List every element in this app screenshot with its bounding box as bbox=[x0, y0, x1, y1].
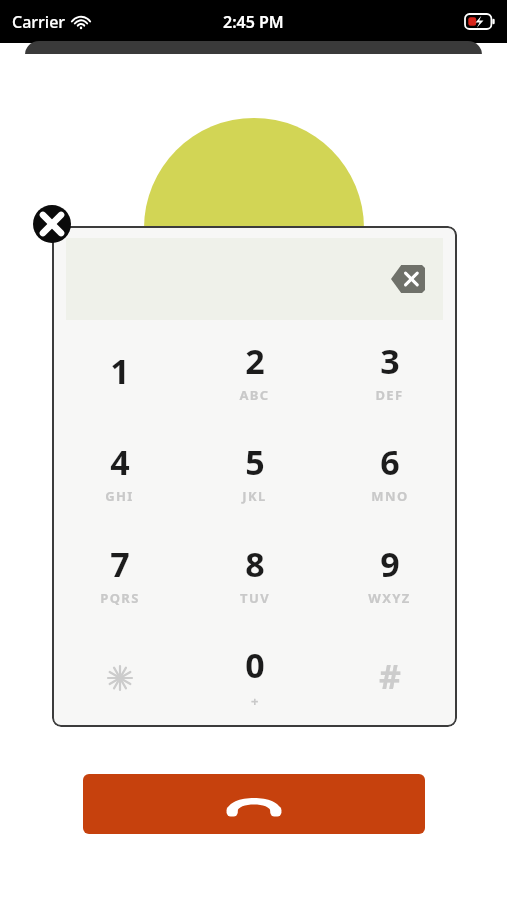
button[interactable]: 8 bbox=[187, 523, 322, 625]
staticText: 1 bbox=[110, 348, 130, 394]
button[interactable]: 1 bbox=[52, 320, 187, 421]
staticText: 0 bbox=[245, 642, 265, 688]
staticText: 8 bbox=[245, 541, 265, 587]
button[interactable]: 5 bbox=[187, 421, 322, 523]
staticText: 5 bbox=[245, 439, 265, 485]
staticText: WXYZ bbox=[368, 589, 411, 607]
button[interactable] bbox=[52, 625, 187, 727]
button[interactable]: Backspace bbox=[391, 265, 425, 293]
staticText: 6 bbox=[380, 439, 400, 485]
staticText: 2:45 PM bbox=[223, 11, 284, 33]
staticText: 7 bbox=[110, 541, 130, 587]
staticText: 3 bbox=[380, 338, 400, 384]
staticText: JKL bbox=[242, 487, 267, 505]
button[interactable]: Close bbox=[33, 205, 71, 243]
staticText: DEF bbox=[375, 386, 404, 404]
button[interactable]: 2 bbox=[187, 320, 322, 421]
button[interactable]: 0 bbox=[187, 625, 322, 727]
staticText: Carrier bbox=[12, 11, 66, 33]
button[interactable]: # bbox=[322, 625, 457, 727]
button[interactable]: 9 bbox=[322, 523, 457, 625]
button[interactable]: End call bbox=[83, 774, 425, 834]
staticText: GHI bbox=[105, 487, 134, 505]
staticText: ABC bbox=[239, 386, 270, 404]
staticText: TUV bbox=[240, 589, 270, 607]
staticText: MNO bbox=[371, 487, 409, 505]
button[interactable]: 4 bbox=[52, 421, 187, 523]
staticText: PQRS bbox=[100, 589, 140, 607]
staticText: 9 bbox=[380, 541, 400, 587]
staticText: + bbox=[251, 692, 260, 710]
button[interactable]: 6 bbox=[322, 421, 457, 523]
staticText: 2 bbox=[245, 338, 265, 384]
staticText: # bbox=[379, 653, 401, 699]
staticText: 4 bbox=[110, 439, 130, 485]
button[interactable]: 3 bbox=[322, 320, 457, 421]
button[interactable]: 7 bbox=[52, 523, 187, 625]
